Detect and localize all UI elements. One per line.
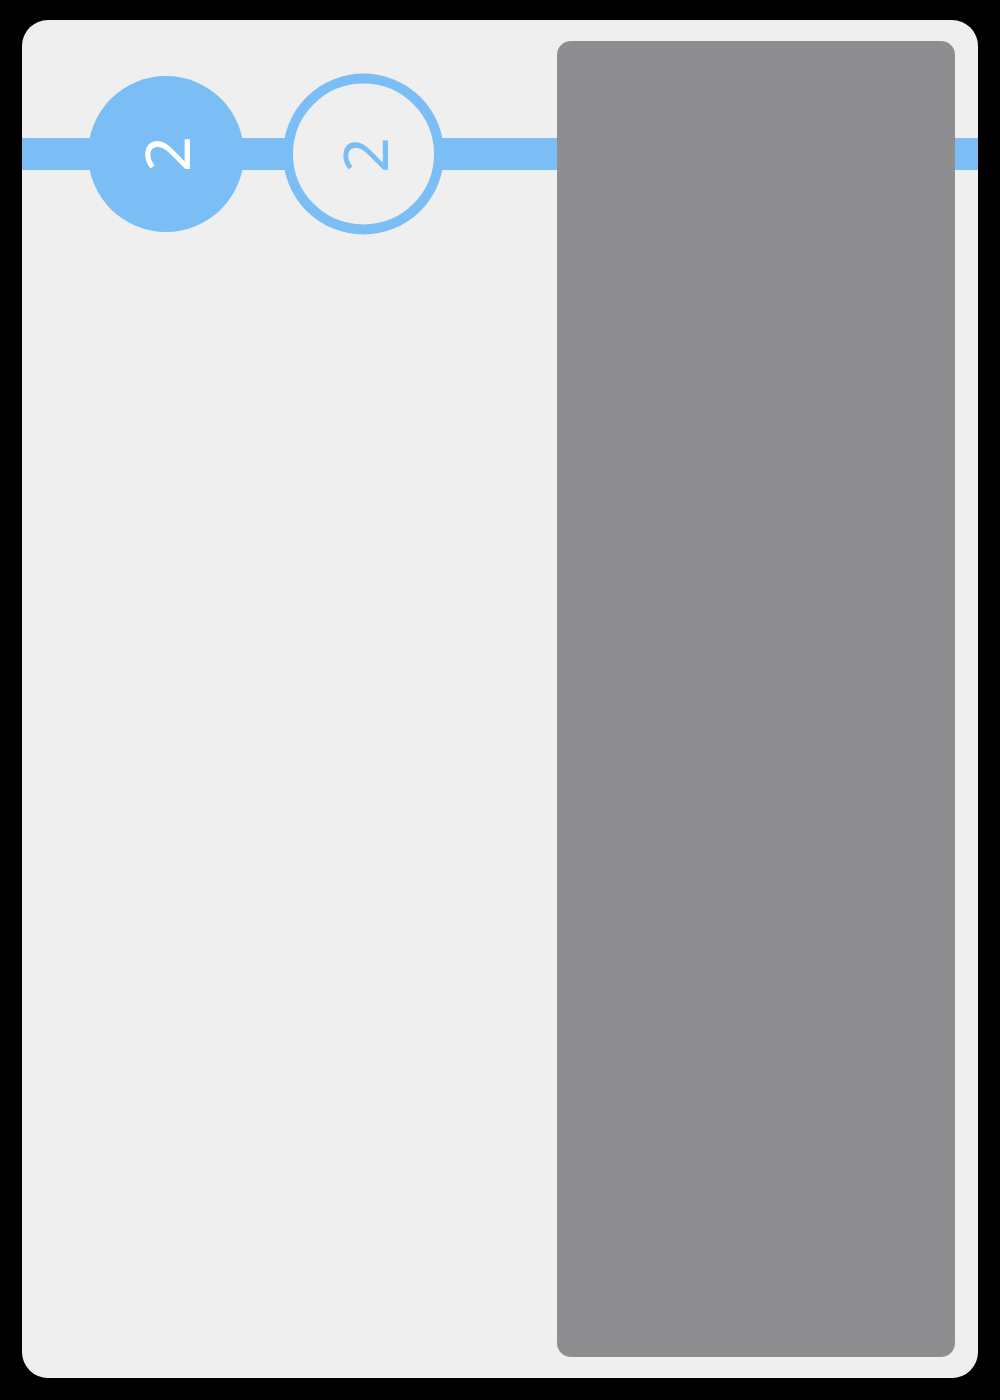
button[interactable]: Step 2, completed: [88, 76, 244, 232]
staticText: 2: [322, 137, 406, 173]
button[interactable]: Step 2, upcoming: [285, 76, 442, 233]
staticText: 2: [124, 136, 208, 172]
